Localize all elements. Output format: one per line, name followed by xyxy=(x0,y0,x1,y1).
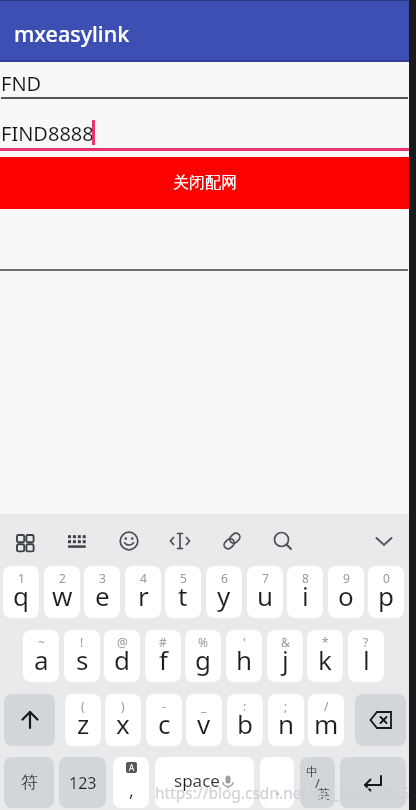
button[interactable] xyxy=(118,530,140,552)
staticText: * xyxy=(322,634,329,650)
staticText: p xyxy=(378,578,394,613)
staticText: https://blog.csdn.net/qq_35508835 xyxy=(155,782,410,803)
staticText: FND xyxy=(1,70,42,97)
button[interactable]: ) xyxy=(105,694,141,746)
staticText: ? xyxy=(363,634,369,650)
staticText: 8 xyxy=(302,570,309,586)
button[interactable]: - xyxy=(146,694,182,746)
staticText: 英 xyxy=(318,786,330,801)
staticText: j xyxy=(282,642,289,677)
button[interactable]: @ xyxy=(104,630,140,682)
button[interactable] xyxy=(340,757,406,808)
staticText: f xyxy=(159,642,168,677)
button[interactable]: A xyxy=(113,757,149,808)
button[interactable] xyxy=(373,531,395,553)
staticText: / xyxy=(315,774,320,792)
staticText: 符 xyxy=(21,772,38,793)
button[interactable]: 6 xyxy=(206,566,242,618)
button[interactable]: 123 xyxy=(59,757,106,808)
staticText: . xyxy=(275,776,280,801)
staticText: ~ xyxy=(38,634,45,650)
button[interactable]: / xyxy=(308,694,344,746)
button[interactable] xyxy=(4,694,55,746)
button[interactable]: 7 xyxy=(247,566,283,618)
staticText: a xyxy=(34,642,49,677)
button[interactable] xyxy=(355,694,406,746)
staticText: i xyxy=(302,578,309,613)
button[interactable]: 5 xyxy=(165,566,201,618)
staticText: 4 xyxy=(140,570,147,586)
button[interactable]: FIND8888 xyxy=(0,108,409,150)
staticText: % xyxy=(198,634,208,650)
button[interactable]: 0 xyxy=(368,566,404,618)
button[interactable] xyxy=(272,530,294,552)
staticText: ! xyxy=(80,634,84,650)
staticText: t xyxy=(178,578,188,613)
staticText: w xyxy=(52,578,73,613)
button[interactable]: ( xyxy=(65,694,101,746)
staticText: h xyxy=(236,642,253,677)
staticText: @ xyxy=(117,634,128,650)
staticText: u xyxy=(257,578,274,613)
button[interactable]: ; xyxy=(268,694,304,746)
staticText: ( xyxy=(81,698,85,714)
button[interactable]: ' xyxy=(226,630,262,682)
button[interactable]: 2 xyxy=(44,566,80,618)
button[interactable]: # xyxy=(145,630,181,682)
button[interactable]: 3 xyxy=(84,566,120,618)
button[interactable]: space xyxy=(155,757,254,808)
staticText: ) xyxy=(121,698,125,714)
staticText: l xyxy=(363,642,370,677)
button[interactable]: ! xyxy=(64,630,100,682)
button[interactable]: ~ xyxy=(23,630,59,682)
staticText: z xyxy=(77,706,90,741)
staticText: # xyxy=(159,634,167,650)
staticText: s xyxy=(76,642,89,677)
staticText: _ xyxy=(201,698,207,714)
button[interactable] xyxy=(221,530,243,552)
button[interactable]: 关闭配网 xyxy=(0,157,410,209)
staticText: & xyxy=(281,634,290,650)
button[interactable]: 8 xyxy=(287,566,323,618)
button[interactable]: & xyxy=(267,630,303,682)
staticText: 2 xyxy=(59,570,66,586)
staticText: ; xyxy=(284,698,288,714)
staticText: mxeasylink xyxy=(14,19,130,48)
staticText: k xyxy=(318,642,332,677)
button[interactable] xyxy=(14,530,36,552)
staticText: / xyxy=(324,698,329,714)
staticText: n xyxy=(278,706,295,741)
staticText: d xyxy=(114,642,130,677)
staticText: y xyxy=(217,578,231,613)
staticText: o xyxy=(338,578,354,613)
staticText: 关闭配网 xyxy=(173,173,237,193)
button[interactable]: * xyxy=(307,630,343,682)
staticText: 3 xyxy=(99,570,106,586)
staticText: r xyxy=(138,578,149,613)
staticText: q xyxy=(13,578,29,613)
staticText: , xyxy=(129,778,134,803)
button[interactable] xyxy=(66,530,88,552)
staticText: FIND8888 xyxy=(1,120,94,147)
staticText: 123 xyxy=(69,772,97,794)
staticText: g xyxy=(195,642,211,677)
button[interactable]: 1 xyxy=(3,566,39,618)
button[interactable] xyxy=(169,530,191,552)
staticText: 7 xyxy=(262,570,269,586)
button[interactable]: 9 xyxy=(328,566,364,618)
staticText: v xyxy=(197,706,211,741)
button[interactable]: 中 xyxy=(300,757,335,808)
button[interactable]: 4 xyxy=(125,566,161,618)
button[interactable]: . xyxy=(260,757,294,808)
button[interactable]: FND xyxy=(0,62,409,102)
button[interactable]: % xyxy=(185,630,221,682)
staticText: 0 xyxy=(383,570,390,586)
staticText: 5 xyxy=(180,570,187,586)
staticText: b xyxy=(237,706,253,741)
staticText: space xyxy=(174,769,220,792)
staticText: A xyxy=(129,762,135,773)
button[interactable]: 符 xyxy=(4,757,54,808)
button[interactable]: : xyxy=(227,694,263,746)
button[interactable]: _ xyxy=(186,694,222,746)
button[interactable]: ? xyxy=(348,630,384,682)
